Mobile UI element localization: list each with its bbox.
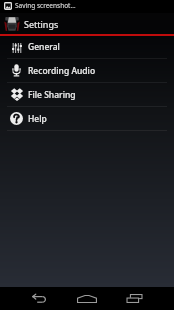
button[interactable]: File Sharing — [0, 83, 174, 106]
staticText: General — [28, 41, 60, 53]
button[interactable]: General — [0, 36, 174, 58]
button[interactable]: Recording Audio — [0, 59, 174, 82]
staticText: Settings — [24, 18, 59, 30]
staticText: Recording Audio — [28, 65, 96, 77]
staticText: File Sharing — [28, 89, 76, 101]
button[interactable]: Help — [0, 107, 174, 130]
button[interactable]: Back — [14, 287, 61, 310]
staticText: Help — [28, 113, 47, 125]
button[interactable]: Home — [63, 287, 110, 310]
button[interactable]: Recent apps — [111, 287, 158, 310]
staticText: Saving screenshot… — [15, 1, 76, 10]
